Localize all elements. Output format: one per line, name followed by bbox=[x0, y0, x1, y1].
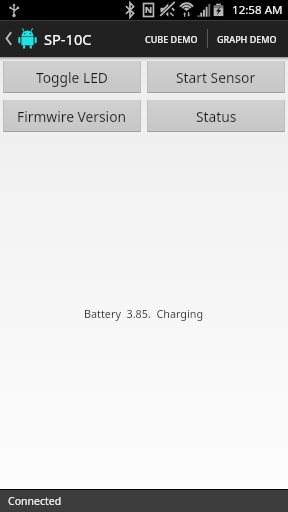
button[interactable]: GRAPH DEMO bbox=[208, 20, 286, 57]
button[interactable]: Back bbox=[0, 20, 16, 57]
staticText: Firmwire Version bbox=[17, 107, 127, 126]
button[interactable]: Status bbox=[147, 100, 285, 132]
button[interactable]: Start Sensor bbox=[147, 61, 285, 93]
staticText: CUBE DEMO bbox=[145, 33, 198, 45]
staticText: GRAPH DEMO bbox=[217, 33, 277, 45]
staticText: Battery 3.85. Charging bbox=[84, 306, 204, 321]
staticText: Connected bbox=[8, 494, 62, 508]
staticText: Status bbox=[196, 107, 237, 126]
button[interactable]: CUBE DEMO bbox=[136, 20, 207, 57]
staticText: 12:58 AM bbox=[232, 2, 283, 18]
button[interactable]: Toggle LED bbox=[3, 61, 141, 93]
staticText: Start Sensor bbox=[176, 68, 256, 87]
button[interactable]: Firmwire Version bbox=[3, 100, 141, 132]
staticText: Toggle LED bbox=[36, 68, 108, 87]
staticText: SP-10C bbox=[44, 29, 92, 49]
